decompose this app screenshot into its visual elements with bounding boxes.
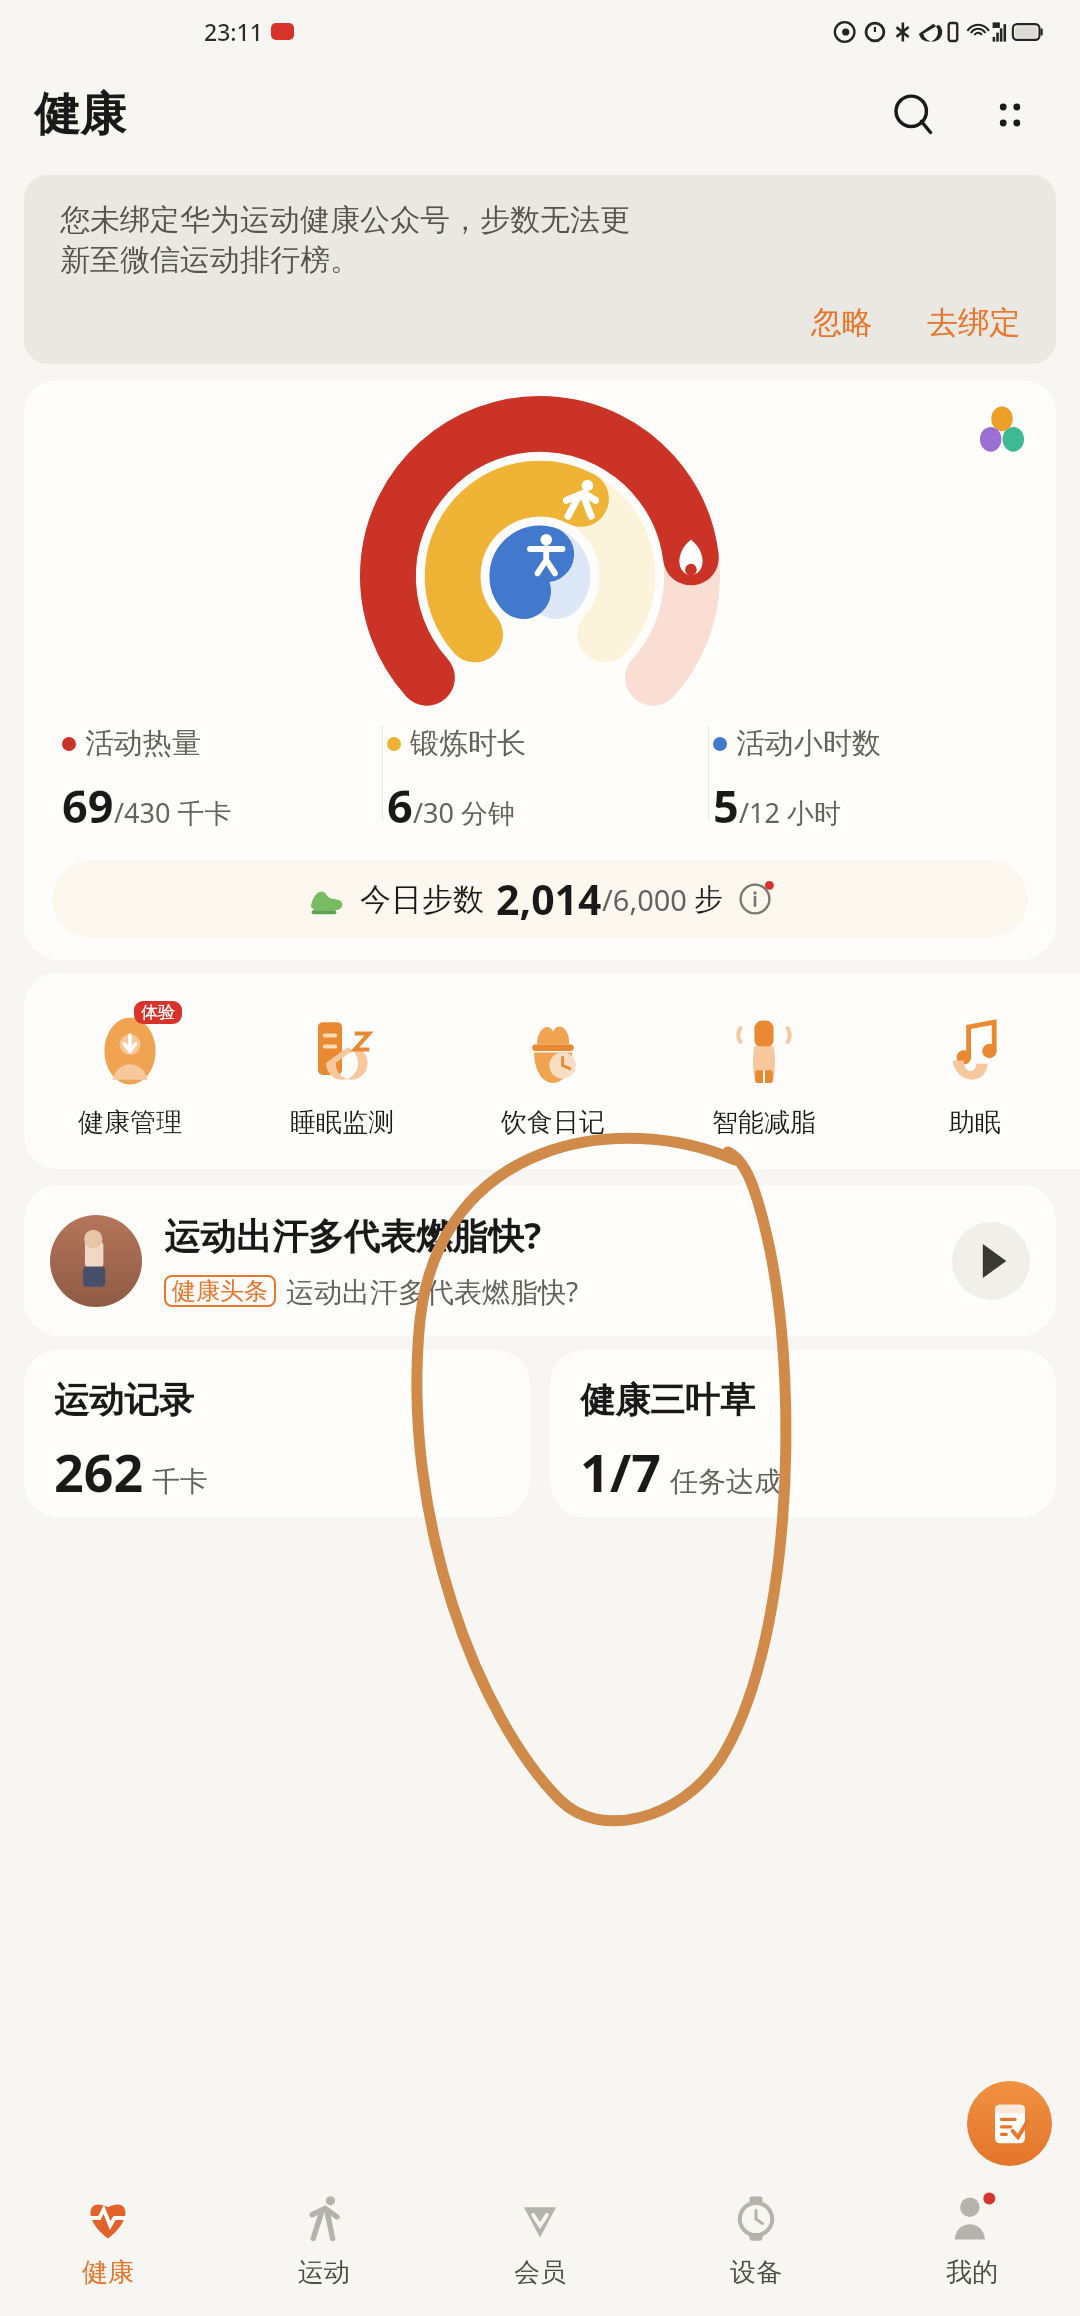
button[interactable]: 健康三叶草 [550,1350,1056,1517]
staticText: 我的 [946,2256,998,2289]
staticText: 活动热量 [85,725,201,762]
button[interactable]: 您未绑定华为运动健康公众号，步数无法更 新至微信运动排行榜。 [24,175,1056,364]
staticText: 饮食日记 [501,1106,605,1139]
staticText: /30 分钟 [413,794,515,831]
staticText: 会员 [514,2256,566,2289]
staticText: 运动记录 [54,1378,194,1422]
staticText: 步 [694,881,723,918]
staticText: 健康管理 [78,1106,182,1139]
staticText: 设备 [730,2256,782,2289]
staticText: 健康三叶草 [580,1378,755,1422]
staticText: 千卡 [152,1464,208,1499]
staticText: 锻炼时长 [410,725,526,762]
button[interactable]: 饮食日记 [447,1001,658,1143]
staticText: /6,000 [602,880,687,919]
button[interactable]: 体验 [24,1001,236,1143]
button[interactable]: 运动出汗多代表燃脂快? [24,1185,1056,1336]
staticText: 去绑定 [927,303,1020,342]
staticText: 忽略 [811,303,873,342]
staticText: 健康 [34,86,126,144]
button[interactable]: 忽略 [805,299,879,346]
staticText: 智能减脂 [712,1106,816,1139]
button[interactable]: 今日步数 [52,860,1028,938]
button[interactable]: Health clover [974,402,1030,458]
button[interactable]: Health clover [24,380,1056,960]
button[interactable]: More options [974,79,1046,151]
staticText: 运动 [298,2256,350,2289]
button[interactable]: 睡眠监测 [236,1001,447,1143]
staticText: 健康 [82,2256,134,2289]
button[interactable]: Search [878,79,950,151]
staticText: 69 [62,775,114,836]
staticText: 2,014 [496,871,602,927]
staticText: 您未绑定华为运动健康公众号，步数无法更 新至微信运动排行榜。 [60,201,630,279]
button[interactable]: 运动 [216,2166,432,2316]
button[interactable]: 运动记录 [24,1350,530,1517]
staticText: 活动小时数 [736,725,881,762]
staticText: 23:11 [204,16,263,47]
staticText: 262 [54,1436,144,1507]
staticText: 运动出汗多代表燃脂快? [286,1272,579,1310]
button[interactable]: 我的 [864,2166,1080,2316]
staticText: 5 [713,775,739,836]
staticText: 健康头条 [172,1276,268,1306]
button[interactable]: 智能减脂 [658,1001,869,1143]
staticText: 睡眠监测 [290,1106,394,1139]
staticText: /12 小时 [739,794,841,831]
staticText: /430 千卡 [114,794,232,831]
button[interactable]: 会员 [432,2166,648,2316]
button[interactable]: Add record [967,2081,1052,2166]
staticText: 6 [387,775,413,836]
staticText: 助眠 [949,1106,1001,1139]
staticText: 体验 [141,1002,175,1023]
button[interactable]: 设备 [648,2166,864,2316]
staticText: 今日步数 [360,880,484,919]
button[interactable]: 去绑定 [921,299,1026,346]
staticText: 运动出汗多代表燃脂快? [164,1211,542,1260]
staticText: 任务达成 [670,1464,782,1499]
button[interactable]: 助眠 [869,1001,1080,1143]
button[interactable]: Play [952,1222,1030,1300]
button[interactable]: 健康 [0,2166,216,2316]
staticText: 1/7 [580,1436,662,1507]
